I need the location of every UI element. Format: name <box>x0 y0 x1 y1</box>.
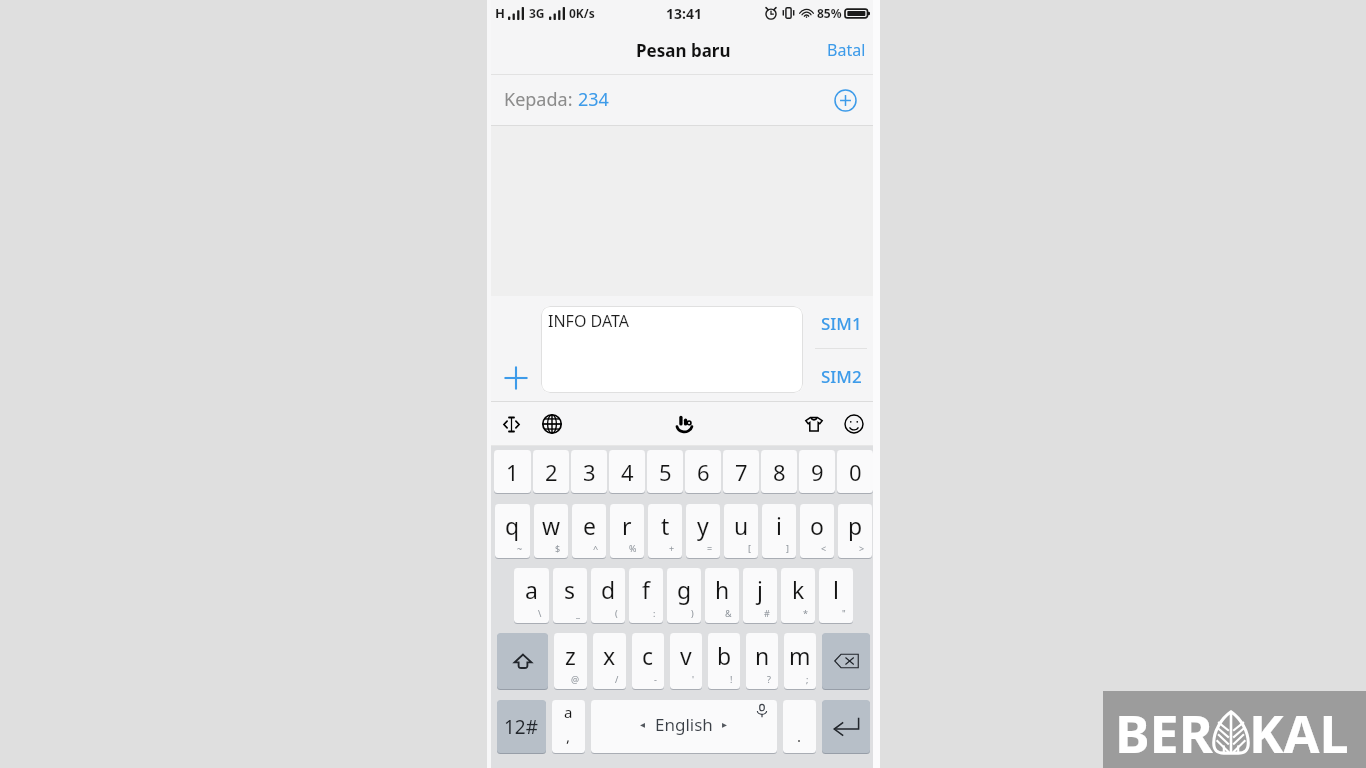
staticText: ▸ <box>722 719 728 731</box>
staticText: 13:41 <box>666 4 702 23</box>
button[interactable]: a <box>514 568 549 623</box>
button[interactable]: p <box>838 504 872 558</box>
button[interactable]: d <box>591 568 625 623</box>
button[interactable]: 6 <box>685 450 721 493</box>
button[interactable]: z <box>554 633 587 689</box>
staticText: / <box>615 673 619 685</box>
button[interactable]: 12# <box>497 700 546 753</box>
button[interactable]: i <box>762 504 796 558</box>
staticText: ? <box>767 673 771 685</box>
button[interactable]: Keyboard menu <box>670 409 700 439</box>
button[interactable]: n <box>746 633 778 689</box>
staticText: w <box>542 510 561 541</box>
staticText: - <box>654 673 657 685</box>
button[interactable]: 4 <box>609 450 645 493</box>
staticText: m <box>789 640 811 671</box>
button[interactable]: k <box>781 568 815 623</box>
staticText: f <box>642 574 650 605</box>
button[interactable]: Add recipient <box>830 85 860 115</box>
button[interactable]: ◂ <box>591 700 777 753</box>
staticText: < <box>821 542 827 554</box>
staticText: @ <box>571 673 580 685</box>
button[interactable]: Keyboard theme <box>800 410 828 438</box>
staticText: H <box>495 4 505 22</box>
staticText: [ <box>748 542 751 554</box>
button[interactable]: Batal <box>813 27 880 73</box>
button[interactable]: m <box>784 633 816 689</box>
staticText: * <box>803 607 808 619</box>
button[interactable]: Attach <box>500 362 532 394</box>
button[interactable]: 2 <box>533 450 569 493</box>
button[interactable]: Move cursor <box>497 410 525 438</box>
staticText: c <box>642 640 654 671</box>
staticText: KAL <box>1249 697 1349 768</box>
button[interactable]: e <box>572 504 606 558</box>
button[interactable]: y <box>686 504 720 558</box>
button[interactable]: 0 <box>837 450 873 493</box>
button[interactable]: b <box>708 633 740 689</box>
staticText: y <box>697 510 709 541</box>
staticText: , <box>566 726 571 746</box>
button[interactable]: o <box>800 504 834 558</box>
staticText: 4 <box>621 457 634 487</box>
staticText: o <box>810 510 824 541</box>
button[interactable]: Change language <box>538 410 566 438</box>
staticText: ^ <box>593 542 599 554</box>
button[interactable]: q <box>495 504 530 558</box>
staticText: : <box>653 607 656 619</box>
staticText: p <box>848 510 863 541</box>
staticText: q <box>505 510 520 541</box>
button[interactable]: h <box>705 568 739 623</box>
button[interactable]: w <box>534 504 568 558</box>
staticText: 0 <box>849 457 862 487</box>
staticText: BER <box>1115 697 1213 768</box>
staticText: _ <box>576 607 580 619</box>
button[interactable]: 1 <box>494 450 531 493</box>
staticText: ' <box>692 673 695 685</box>
button[interactable]: 8 <box>761 450 797 493</box>
button[interactable] <box>822 700 870 753</box>
button[interactable] <box>497 633 548 689</box>
button[interactable]: u <box>724 504 758 558</box>
staticText: v <box>680 640 692 671</box>
staticText: ; <box>806 673 809 685</box>
staticText: 6 <box>697 457 710 487</box>
button[interactable]: 3 <box>571 450 607 493</box>
button[interactable]: c <box>632 633 664 689</box>
staticText: & <box>725 607 732 619</box>
staticText: 85% <box>817 5 842 21</box>
button[interactable]: SIM1 <box>803 296 880 351</box>
staticText: English <box>655 713 713 736</box>
button[interactable] <box>822 633 870 689</box>
staticText: # <box>764 607 770 619</box>
button[interactable]: SIM2 <box>803 351 880 402</box>
staticText: 3G <box>529 5 545 21</box>
staticText: + <box>669 542 675 554</box>
button[interactable]: x <box>593 633 626 689</box>
button[interactable]: g <box>667 568 701 623</box>
button[interactable]: 7 <box>723 450 759 493</box>
button[interactable]: r <box>610 504 644 558</box>
button[interactable]: l <box>819 568 853 623</box>
staticText: j <box>757 574 763 605</box>
button[interactable]: f <box>629 568 663 623</box>
button[interactable]: 5 <box>647 450 683 493</box>
staticText: . <box>797 726 802 746</box>
button[interactable]: a <box>552 700 585 753</box>
button[interactable]: s <box>553 568 587 623</box>
staticText: = <box>707 542 713 554</box>
button[interactable]: . <box>783 700 816 753</box>
staticText: 8 <box>773 457 786 487</box>
button[interactable]: INFO DATA <box>541 306 803 393</box>
staticText: \ <box>538 607 542 619</box>
staticText: t <box>661 510 670 541</box>
staticText: Batal <box>827 39 866 61</box>
button[interactable]: 9 <box>799 450 835 493</box>
button[interactable]: v <box>670 633 702 689</box>
button[interactable]: j <box>743 568 777 623</box>
staticText: ◂ <box>640 719 646 731</box>
button[interactable]: Emoji <box>840 410 868 438</box>
button[interactable]: t <box>648 504 682 558</box>
staticText: u <box>734 510 749 541</box>
staticText: i <box>776 510 782 541</box>
